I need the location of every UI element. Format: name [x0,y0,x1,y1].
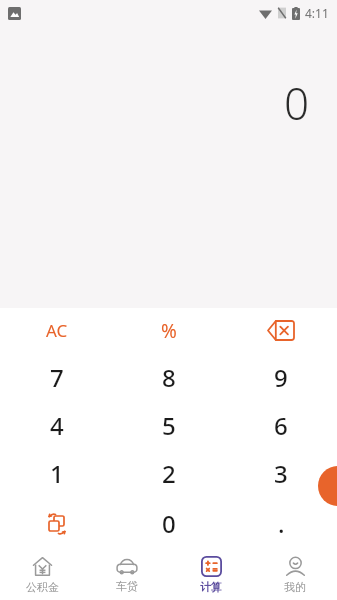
staticText: . [278,507,285,540]
staticText: 6 [274,409,288,442]
staticText: 1 [50,457,64,490]
button[interactable]: . [225,497,337,550]
staticText: 2 [162,457,176,490]
staticText: 公积金 [26,580,59,594]
staticText: 我的 [284,580,306,594]
button[interactable]: 计算 [169,550,253,600]
button[interactable]: 我的 [253,550,337,600]
button[interactable]: 3 [225,449,337,497]
staticText: % [161,318,177,344]
staticText: 4:11 [305,5,329,21]
staticText: 0 [162,507,176,540]
staticText: 8 [162,361,176,394]
staticText: 7 [50,361,64,394]
button[interactable]: Backspace [225,308,337,353]
staticText: 计算 [200,580,222,594]
staticText: 0 [284,73,310,133]
staticText: 9 [274,361,288,394]
button[interactable]: Convert [0,497,113,550]
staticText: 3 [274,457,288,490]
button[interactable]: 9 [225,353,337,401]
button[interactable]: 2 [113,449,225,497]
button[interactable]: 4 [0,401,113,449]
staticText: 4 [50,409,64,442]
button[interactable]: 1 [0,449,113,497]
staticText: 5 [162,409,176,442]
button[interactable]: 车贷 [85,550,169,600]
button[interactable]: AC [0,308,113,353]
button[interactable]: 公积金 [0,550,85,600]
button[interactable]: 5 [113,401,225,449]
button[interactable]: Equals [318,466,337,506]
staticText: 车贷 [116,579,138,593]
staticText: AC [46,319,68,342]
button[interactable]: 7 [0,353,113,401]
button[interactable]: 6 [225,401,337,449]
button[interactable]: 8 [113,353,225,401]
button[interactable]: % [113,308,225,353]
button[interactable]: 0 [113,497,225,550]
